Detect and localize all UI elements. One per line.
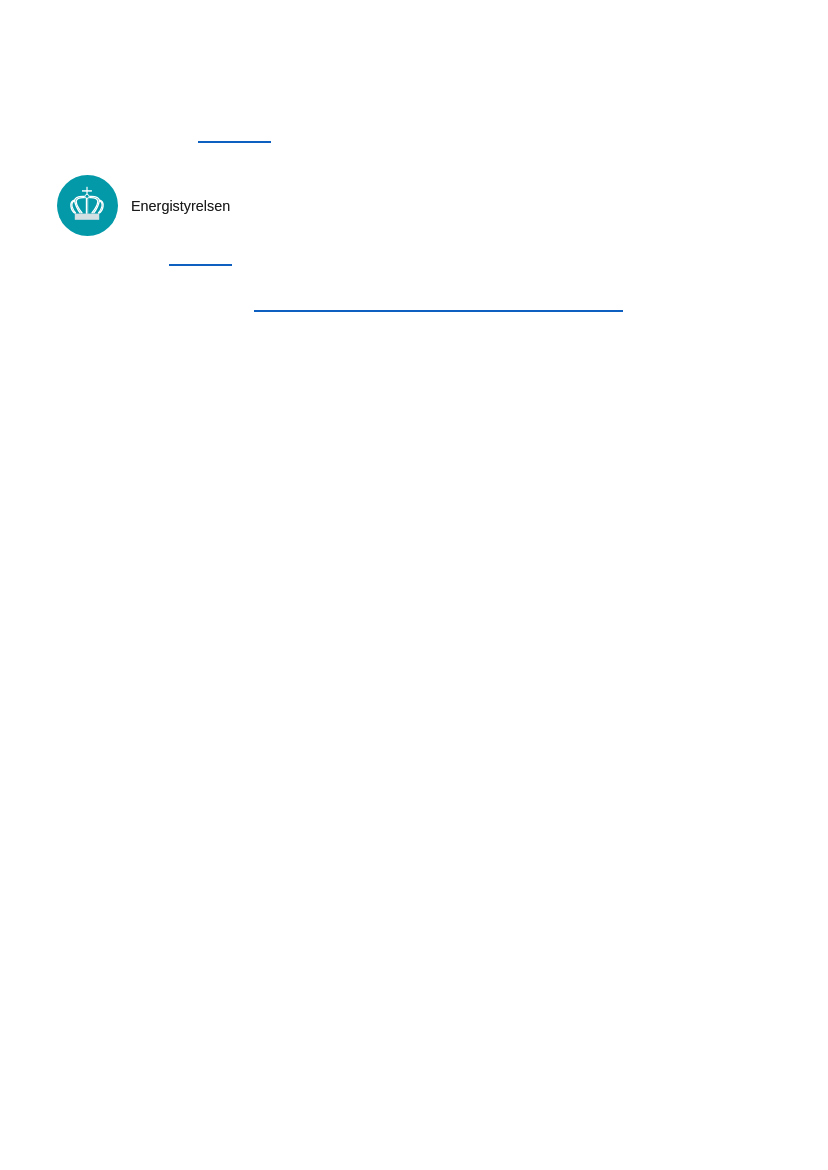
button[interactable]: Energistyrelsen crown logo [57,175,233,236]
button[interactable]: Skip to content [198,130,271,143]
staticText: Energistyrelsen [131,198,231,214]
staticText: Energistyrelsen [131,198,231,214]
button[interactable]: Page link [254,299,623,312]
button[interactable]: Menu link [169,253,232,266]
other: Energistyrelsen crown logo [57,175,118,236]
